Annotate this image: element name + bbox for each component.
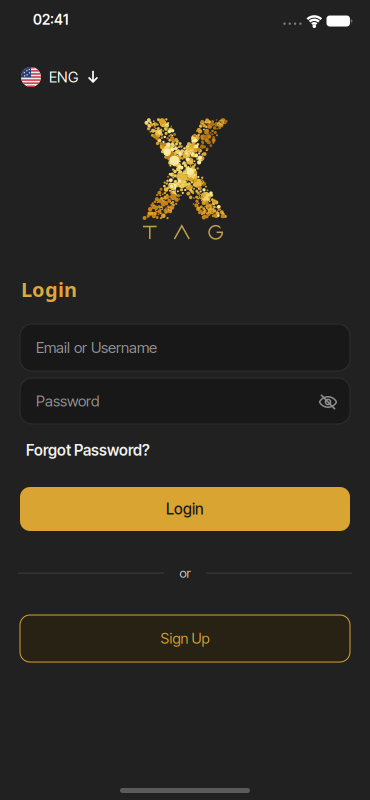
button[interactable]: Email or Username [20,324,350,371]
staticText: Email or Username [36,338,157,357]
button[interactable]: Password [20,378,350,424]
button[interactable]: Forgot Password? [26,441,150,460]
button[interactable]: Show password [310,387,344,417]
staticText: Login [166,500,204,518]
button[interactable]: Login [20,487,350,531]
button[interactable]: Change language [21,67,100,87]
button[interactable]: Sign Up [20,615,350,662]
staticText: ENG [49,68,78,86]
staticText: or [179,565,190,581]
staticText: Forgot Password? [26,441,150,460]
staticText: Sign Up [160,630,209,647]
staticText: 02:41 [33,11,68,28]
staticText: Login [21,276,77,303]
staticText: Password [36,392,99,410]
